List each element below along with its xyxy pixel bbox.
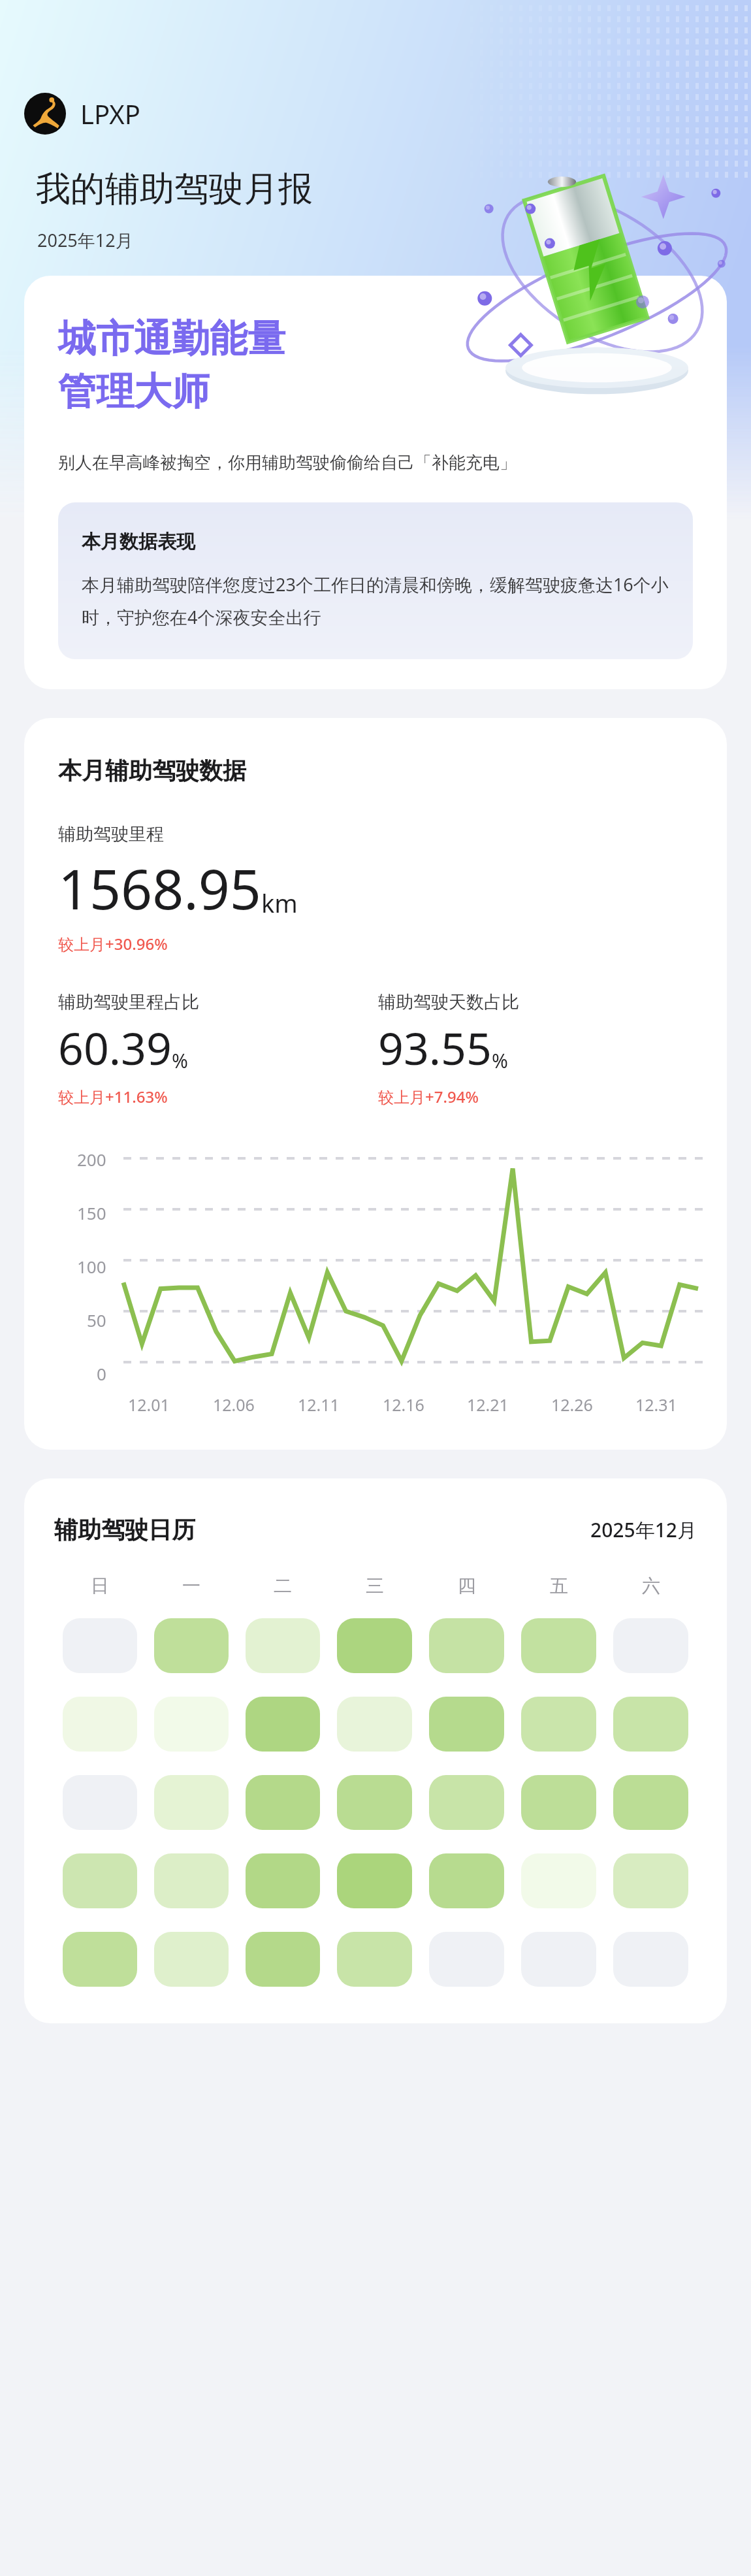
button[interactable] [246, 1853, 320, 1908]
button[interactable] [521, 1853, 596, 1908]
button[interactable] [613, 1932, 688, 1987]
button[interactable] [246, 1618, 320, 1673]
staticText: 12.21 [467, 1394, 509, 1416]
staticText: 三 [366, 1574, 384, 1597]
staticText: 本月辅助驾驶数据 [58, 756, 246, 785]
button[interactable] [337, 1932, 412, 1987]
button[interactable] [63, 1853, 137, 1908]
staticText: 12.01 [128, 1394, 170, 1416]
button[interactable] [63, 1618, 137, 1673]
staticText: % [492, 1047, 508, 1074]
staticText: 60.39 [58, 1017, 172, 1078]
button[interactable] [63, 1775, 137, 1830]
button[interactable]: 辅助驾驶日历 [24, 1478, 727, 2023]
button[interactable] [429, 1932, 504, 1987]
button[interactable]: 辅助驾驶天数占比 [378, 991, 698, 1107]
staticText: 管理大师 [58, 368, 210, 416]
button[interactable] [63, 1697, 137, 1752]
button[interactable] [429, 1697, 504, 1752]
button[interactable] [63, 1932, 137, 1987]
button[interactable] [154, 1697, 229, 1752]
button[interactable]: 本月辅助驾驶数据 [24, 718, 727, 1450]
button[interactable] [521, 1618, 596, 1673]
staticText: 50 [87, 1309, 106, 1331]
staticText: 0 [97, 1362, 106, 1385]
staticText: 12.31 [635, 1394, 677, 1416]
button[interactable] [154, 1618, 229, 1673]
button[interactable] [521, 1932, 596, 1987]
staticText: 2025年12月 [37, 228, 133, 252]
staticText: 我的辅助驾驶月报 [36, 167, 313, 211]
button[interactable]: LPXP brand [24, 93, 140, 135]
button[interactable] [521, 1775, 596, 1830]
other: Energy battery illustration [458, 163, 735, 402]
staticText: % [172, 1047, 188, 1074]
staticText: 100 [77, 1255, 106, 1278]
staticText: 12.26 [551, 1394, 593, 1416]
staticText: 辅助驾驶里程 [58, 823, 164, 845]
button[interactable] [613, 1775, 688, 1830]
button[interactable] [154, 1775, 229, 1830]
button[interactable] [246, 1697, 320, 1752]
button[interactable] [521, 1697, 596, 1752]
button[interactable] [337, 1853, 412, 1908]
button[interactable]: 辅助驾驶里程占比 [58, 991, 378, 1107]
staticText: 辅助驾驶里程占比 [58, 991, 199, 1013]
staticText: 五 [550, 1574, 568, 1597]
button[interactable] [429, 1775, 504, 1830]
staticText: 150 [77, 1201, 106, 1224]
staticText: 别人在早高峰被掏空，你用辅助驾驶偷偷给自己「补能充电」 [58, 452, 517, 474]
staticText: 93.55 [378, 1017, 492, 1078]
staticText: 200 [77, 1148, 106, 1171]
button[interactable] [613, 1697, 688, 1752]
staticText: 12.06 [213, 1394, 255, 1416]
button[interactable] [337, 1775, 412, 1830]
button[interactable] [154, 1932, 229, 1987]
staticText: km [261, 886, 298, 920]
button[interactable] [246, 1775, 320, 1830]
staticText: 较上月+30.96% [58, 933, 168, 954]
staticText: 较上月+11.63% [58, 1086, 168, 1107]
staticText: 1568.95 [58, 851, 261, 925]
staticText: 城市通勤能量 [58, 315, 285, 363]
staticText: LPXP [80, 96, 140, 131]
staticText: 二 [274, 1574, 292, 1597]
staticText: 一 [182, 1574, 200, 1597]
button[interactable] [613, 1853, 688, 1908]
staticText: 六 [642, 1574, 660, 1597]
button[interactable] [154, 1853, 229, 1908]
staticText: 日 [91, 1574, 109, 1597]
staticText: 本月数据表现 [82, 530, 195, 554]
button[interactable] [613, 1618, 688, 1673]
button[interactable]: 城市通勤能量 [24, 276, 727, 689]
button[interactable] [429, 1618, 504, 1673]
button[interactable] [429, 1853, 504, 1908]
staticText: 本月辅助驾驶陪伴您度过23个工作日的清晨和傍晚，缓解驾驶疲惫达16个小时，守护您… [82, 572, 675, 629]
staticText: 辅助驾驶日历 [54, 1515, 195, 1544]
staticText: 较上月+7.94% [378, 1086, 479, 1107]
staticText: 12.11 [298, 1394, 340, 1416]
staticText: 四 [458, 1574, 476, 1597]
staticText: 2025年12月 [590, 1516, 697, 1543]
button[interactable] [246, 1932, 320, 1987]
button[interactable] [337, 1697, 412, 1752]
staticText: 12.16 [383, 1394, 424, 1416]
button[interactable] [337, 1618, 412, 1673]
staticText: 辅助驾驶天数占比 [378, 991, 519, 1013]
button[interactable]: 本月数据表现 [58, 502, 693, 659]
